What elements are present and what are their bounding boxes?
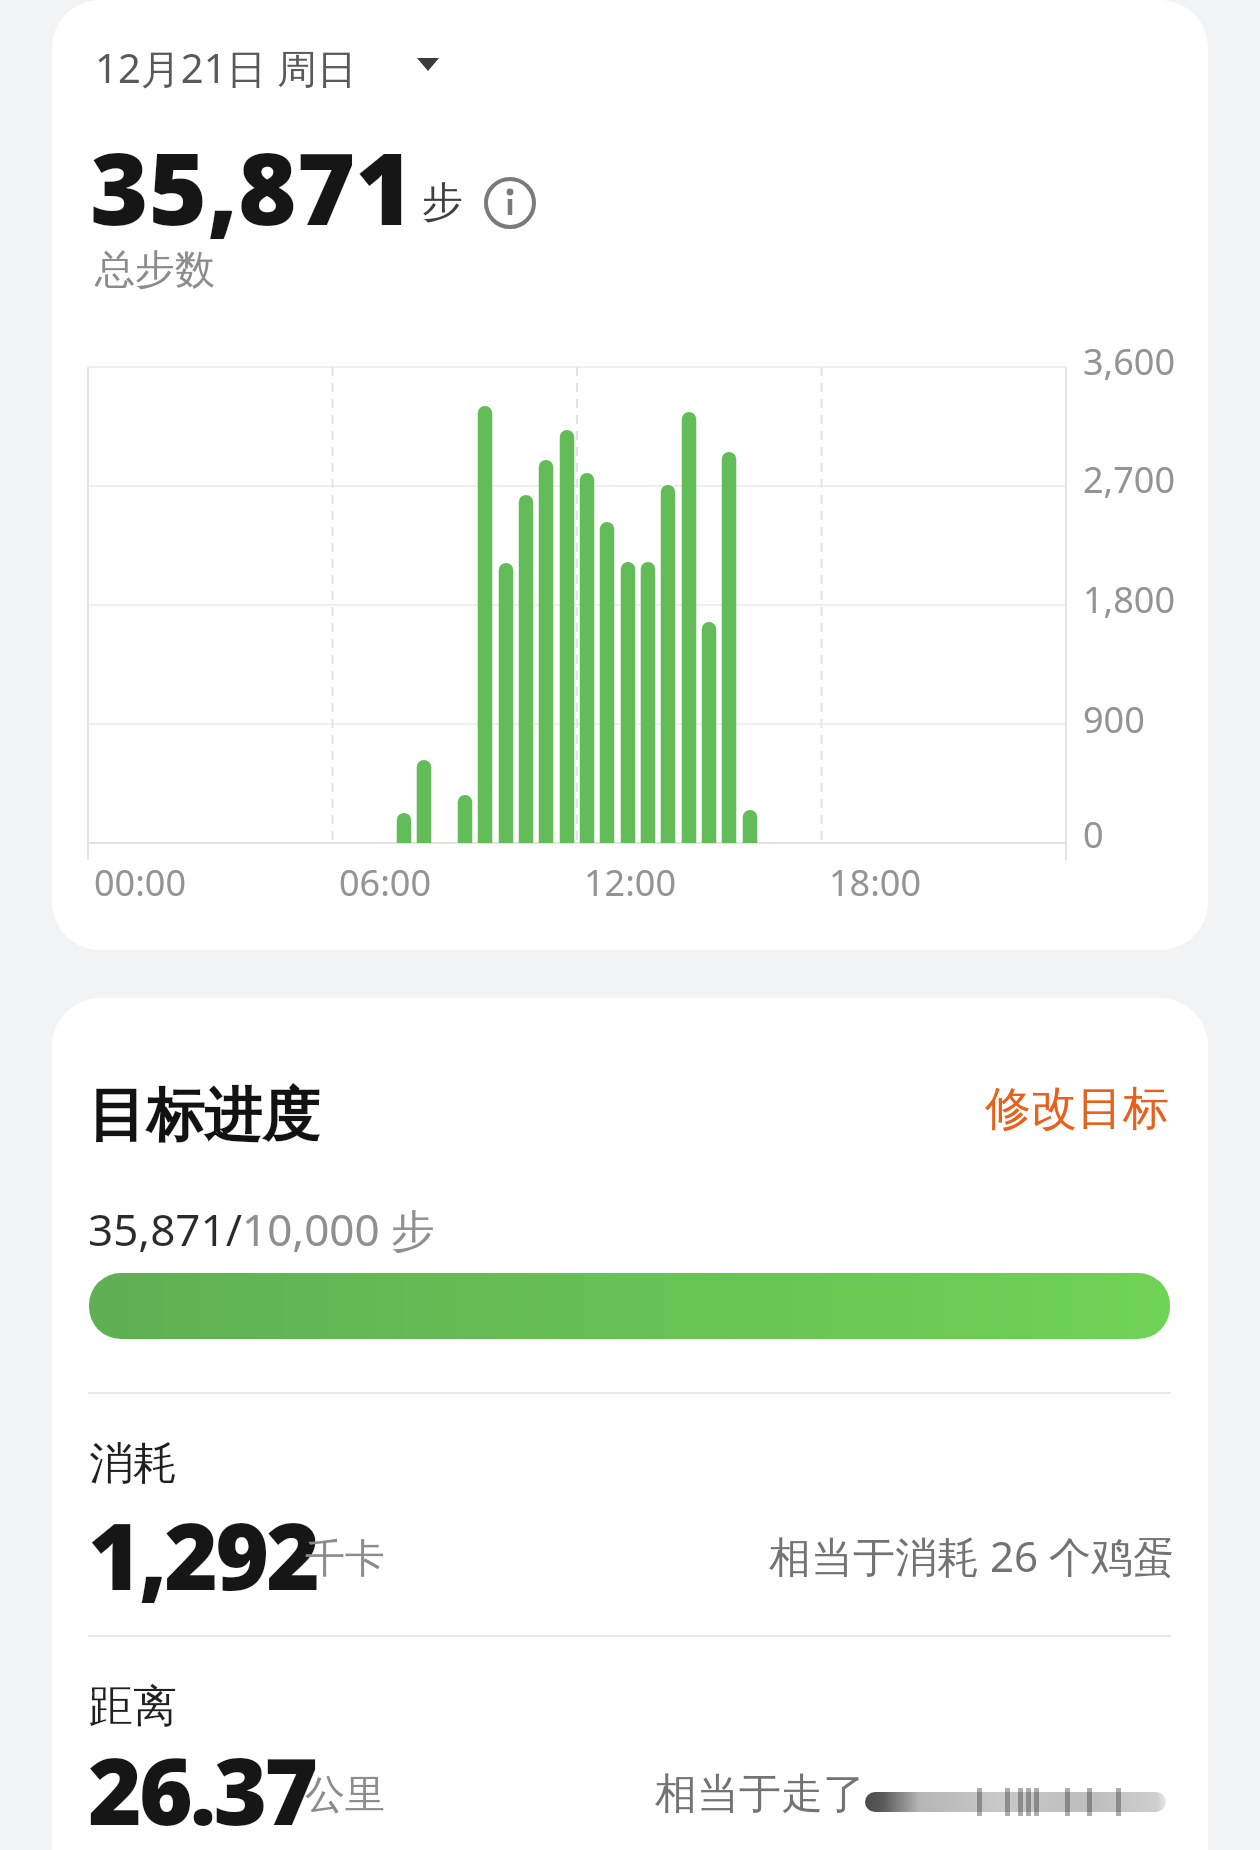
staticText: 1,292 xyxy=(88,1492,318,1617)
staticText: 12:00 xyxy=(570,858,690,907)
staticText: 目标进度 xyxy=(88,1079,320,1152)
staticText: 06:00 xyxy=(325,858,445,907)
staticText: 0 xyxy=(1083,810,1104,859)
staticText: 消耗 xyxy=(89,1436,177,1491)
staticText: 35,871/ xyxy=(88,1199,242,1259)
button[interactable] xyxy=(482,175,538,231)
staticText: 相当于消耗 26 个鸡蛋 xyxy=(769,1527,1175,1584)
staticText: 2,700 xyxy=(1083,455,1176,504)
staticText: 3,600 xyxy=(1083,337,1176,386)
staticText: 步 xyxy=(422,177,463,229)
staticText: 12月21日 周日 xyxy=(95,40,357,95)
staticText: 35,871 xyxy=(90,118,414,254)
button[interactable]: 12月21日 周日 xyxy=(95,40,357,95)
button[interactable]: 修改目标 xyxy=(985,1080,1169,1138)
staticText: 18:00 xyxy=(815,858,935,907)
staticText: 26.37 xyxy=(88,1727,316,1850)
staticText: 千卡 xyxy=(305,1533,385,1583)
staticText: 900 xyxy=(1083,695,1145,744)
staticText: 1,800 xyxy=(1083,575,1176,624)
staticText: 10,000 步 xyxy=(242,1199,436,1259)
staticText: 距离 xyxy=(89,1679,177,1734)
staticText: 总步数 xyxy=(95,244,215,294)
staticText: 00:00 xyxy=(80,858,200,907)
staticText: 公里 xyxy=(305,1769,385,1819)
staticText: 相当于走了 xyxy=(655,1768,865,1821)
